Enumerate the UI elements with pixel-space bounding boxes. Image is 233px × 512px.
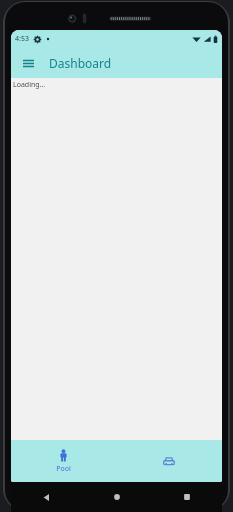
button[interactable]: Home	[82, 482, 152, 512]
button[interactable]: Pool	[11, 440, 116, 482]
button[interactable]: Open navigation menu	[17, 52, 39, 74]
staticText: Dashboard	[49, 55, 112, 71]
staticText: 4:53	[15, 34, 29, 44]
button[interactable]: Recent apps	[152, 482, 222, 512]
staticText: Pool	[56, 464, 71, 474]
staticText: Loading…	[13, 80, 46, 90]
button[interactable]: Rides	[116, 440, 222, 482]
button[interactable]: Back	[11, 482, 82, 512]
